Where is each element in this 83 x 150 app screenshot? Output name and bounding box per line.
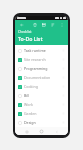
staticText: Work bbox=[24, 102, 33, 107]
staticText: Cooking bbox=[24, 84, 38, 89]
staticText: Bill bbox=[24, 93, 30, 98]
staticText: Design bbox=[24, 120, 36, 125]
button[interactable]: Recents bbox=[23, 128, 30, 135]
button[interactable]: Task runtime bbox=[15, 46, 68, 55]
button[interactable]: Site research bbox=[15, 55, 68, 64]
button[interactable]: Bill bbox=[15, 91, 68, 100]
staticText: Garden bbox=[24, 111, 37, 116]
button[interactable]: Garden bbox=[15, 109, 68, 118]
staticText: Programming bbox=[24, 66, 48, 71]
button[interactable]: Archive bbox=[40, 21, 47, 28]
button[interactable]: Design bbox=[15, 118, 68, 127]
staticText: Checklist bbox=[18, 30, 32, 34]
button[interactable]: Cooking bbox=[15, 82, 68, 91]
button[interactable]: Home bbox=[38, 128, 45, 135]
button[interactable]: Back bbox=[18, 21, 25, 28]
button[interactable]: Delete bbox=[31, 21, 38, 28]
button[interactable]: More options bbox=[58, 21, 65, 28]
button[interactable]: Documentation bbox=[15, 73, 68, 82]
staticText: To-Do List bbox=[18, 35, 43, 42]
staticText: Task runtime bbox=[24, 48, 46, 53]
button[interactable]: Sort bbox=[49, 21, 56, 28]
button[interactable]: Work bbox=[15, 100, 68, 109]
staticText: Documentation bbox=[24, 75, 51, 80]
button[interactable]: Programming bbox=[15, 64, 68, 73]
staticText: Site research bbox=[24, 57, 46, 62]
